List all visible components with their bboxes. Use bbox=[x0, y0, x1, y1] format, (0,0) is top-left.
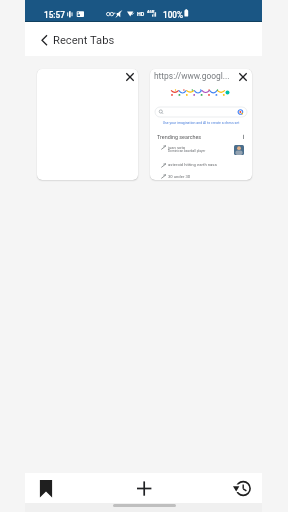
button[interactable]: Bookmarks bbox=[34, 476, 58, 500]
staticText: Dominican baseball player bbox=[168, 149, 206, 153]
button[interactable]: https://www.googl... bbox=[150, 69, 252, 180]
staticText: asteroid hitting earth nasa bbox=[168, 162, 217, 167]
button[interactable]: Close tab bbox=[235, 69, 251, 85]
staticText: 30 under 30 bbox=[168, 174, 191, 179]
button[interactable]: Back bbox=[33, 28, 57, 52]
staticText: HD bbox=[137, 11, 145, 17]
staticText: 46R bbox=[147, 9, 155, 14]
staticText: https://www.googl... bbox=[154, 71, 230, 81]
staticText: Recent Tabs bbox=[53, 34, 115, 47]
button[interactable]: Close tab bbox=[37, 69, 138, 180]
staticText: Use your imagination and AI to create a … bbox=[156, 121, 246, 125]
button[interactable]: History bbox=[230, 476, 254, 500]
staticText: Trending searches bbox=[157, 134, 202, 140]
button[interactable]: New tab bbox=[132, 476, 156, 500]
staticText: juan soto bbox=[168, 145, 186, 150]
staticText: 100% bbox=[163, 10, 183, 20]
button[interactable]: Close tab bbox=[122, 69, 138, 85]
staticText: 15:57 bbox=[44, 10, 65, 20]
